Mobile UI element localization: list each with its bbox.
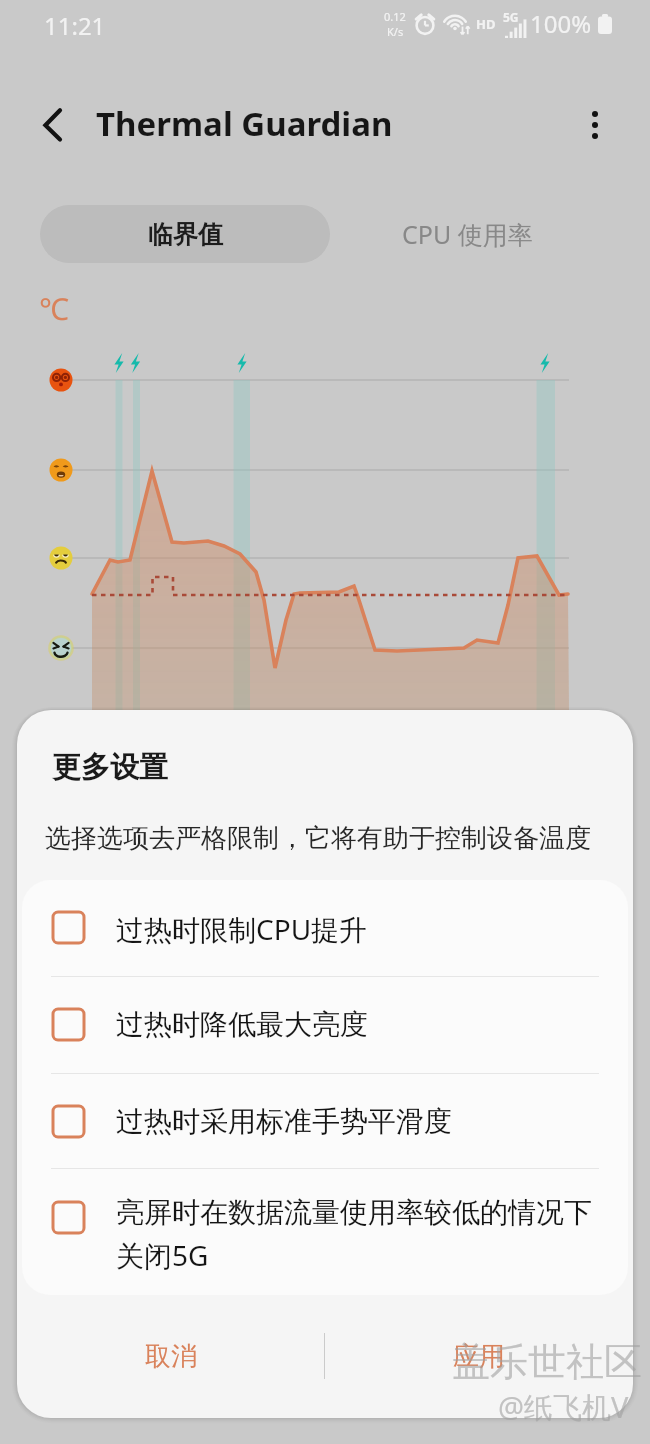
button[interactable]: Back <box>24 87 82 145</box>
staticText: 过热时降低最大亮度 <box>116 1007 368 1042</box>
staticText: ℃ <box>39 288 69 329</box>
staticText: 过热时限制CPU提升 <box>116 910 368 948</box>
button[interactable]: 应用 <box>325 1295 633 1417</box>
staticText: 临界值 <box>148 219 223 250</box>
staticText: 亮屏时在数据流量使用率较低的情况下 关闭5G <box>116 1195 592 1274</box>
staticText: @纸飞机V <box>498 1387 629 1427</box>
staticText: 选择选项去严格限制，它将有助于控制设备温度 <box>45 822 591 855</box>
staticText: Thermal Guardian <box>96 101 393 146</box>
staticText: 盖乐世社区 <box>452 1338 642 1386</box>
staticText: HD <box>476 15 496 33</box>
staticText: K/s <box>387 24 404 39</box>
button[interactable]: More options <box>566 87 624 145</box>
button[interactable]: 过热时采用标准手势平滑度 <box>22 1074 628 1168</box>
button[interactable]: 过热时降低最大亮度 <box>22 977 628 1073</box>
button[interactable]: 过热时限制CPU提升 <box>22 880 628 976</box>
staticText: 应用 <box>453 1340 505 1373</box>
staticText: 取消 <box>145 1340 197 1373</box>
staticText: 5G <box>503 9 519 25</box>
staticText: 过热时采用标准手势平滑度 <box>116 1104 452 1139</box>
staticText: CPU 使用率 <box>402 217 533 251</box>
staticText: 11:21 <box>44 9 106 42</box>
button[interactable]: 取消 <box>17 1295 324 1417</box>
staticText: 100% <box>530 7 592 40</box>
button[interactable]: 临界值 <box>40 205 330 263</box>
button[interactable]: CPU 使用率 <box>335 205 600 263</box>
button[interactable]: 亮屏时在数据流量使用率较低的情况下 关闭5G <box>22 1169 628 1295</box>
staticText: 0.12 <box>384 9 406 24</box>
staticText: 更多设置 <box>52 749 168 786</box>
